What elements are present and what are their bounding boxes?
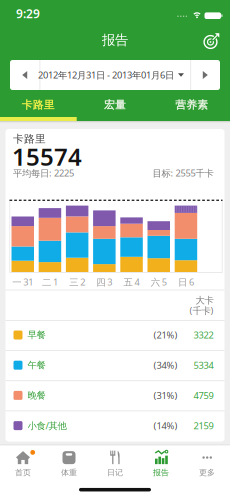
button[interactable] bbox=[191, 60, 220, 90]
staticText: 午餐 bbox=[27, 359, 45, 371]
staticText: 报告 bbox=[153, 468, 169, 477]
staticText: 日记 bbox=[107, 468, 123, 477]
staticText: (34%) bbox=[153, 359, 177, 371]
staticText: 晚餐 bbox=[27, 390, 45, 401]
staticText: 体重 bbox=[61, 468, 77, 477]
staticText: 更多 bbox=[199, 468, 215, 477]
button[interactable]: 卡路里 bbox=[0, 92, 77, 118]
button[interactable]: 宏量 bbox=[77, 92, 153, 118]
button[interactable]: 更多 bbox=[184, 444, 230, 484]
button[interactable]: 首页 bbox=[0, 444, 46, 484]
staticText: 五 4 bbox=[124, 276, 140, 288]
staticText: 首页 bbox=[15, 468, 31, 477]
staticText: 小食/其他 bbox=[27, 419, 66, 432]
staticText: 卡路里 bbox=[13, 132, 46, 145]
staticText: (14%) bbox=[153, 419, 177, 432]
staticText: 卡路里 bbox=[22, 98, 55, 111]
staticText: 日 6 bbox=[178, 276, 194, 288]
button[interactable]: 报告 bbox=[138, 444, 184, 484]
button[interactable] bbox=[198, 27, 222, 55]
staticText: 宏量 bbox=[104, 98, 126, 111]
staticText: 二 1 bbox=[42, 276, 58, 288]
staticText: (21%) bbox=[153, 329, 177, 341]
staticText: 2012年12月31日 - 2013年01月6日 bbox=[38, 69, 174, 81]
button[interactable]: 日记 bbox=[92, 444, 138, 484]
staticText: 大卡 bbox=[195, 295, 213, 306]
staticText: (千卡) bbox=[189, 304, 213, 317]
staticText: 三 2 bbox=[69, 276, 85, 288]
staticText: 3322 bbox=[193, 329, 213, 341]
staticText: 4759 bbox=[193, 389, 213, 402]
button[interactable] bbox=[10, 60, 39, 90]
button[interactable]: 体重 bbox=[46, 444, 92, 484]
staticText: 5334 bbox=[193, 359, 213, 371]
staticText: 早餐 bbox=[27, 329, 45, 341]
staticText: 平均每日: 2225 bbox=[13, 167, 74, 179]
button[interactable]: 营养素 bbox=[153, 92, 230, 118]
staticText: 目标: 2555千卡 bbox=[152, 167, 213, 179]
staticText: (31%) bbox=[153, 389, 177, 402]
staticText: 六 5 bbox=[151, 276, 167, 288]
staticText: 2159 bbox=[193, 419, 213, 432]
staticText: 四 3 bbox=[96, 276, 112, 288]
staticText: 一 31 bbox=[12, 276, 33, 288]
staticText: 15574 bbox=[12, 141, 82, 172]
staticText: 报告 bbox=[102, 32, 128, 48]
staticText: 9:29 bbox=[16, 5, 40, 21]
staticText: 营养素 bbox=[175, 98, 208, 111]
button[interactable]: 2012年12月31日 - 2013年01月6日 bbox=[36, 60, 186, 90]
